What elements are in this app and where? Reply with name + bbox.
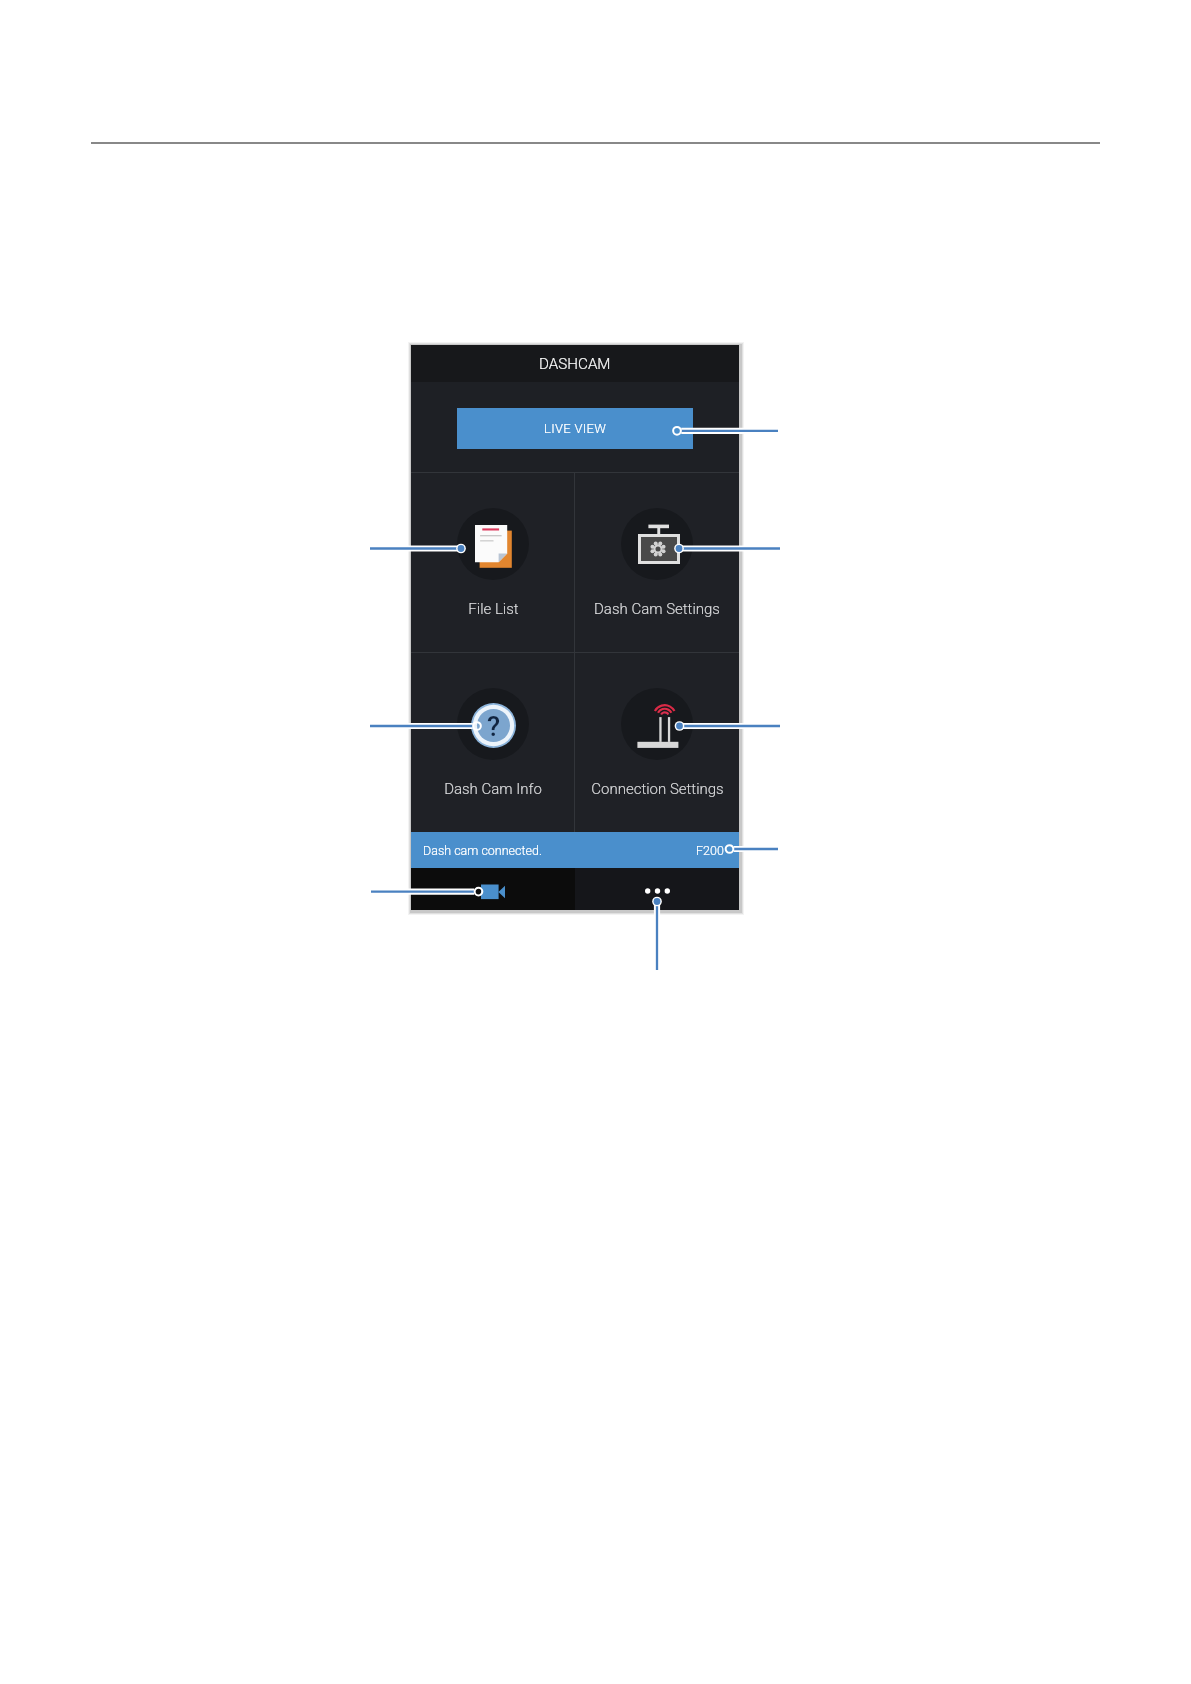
button[interactable]: ? [411,652,575,832]
button[interactable]: Connection Settings [575,652,739,832]
staticText: Dash Cam Settings [594,600,720,618]
button[interactable]: Live video [411,868,575,910]
staticText: File List [468,600,519,618]
button[interactable]: LIVE VIEW [457,408,693,449]
staticText: Connection Settings [591,780,724,798]
staticText: ? [487,711,501,743]
staticText: Dash cam connected. [423,843,542,858]
staticText: DASHCAM [539,355,611,373]
button[interactable]: More options [575,868,739,910]
staticText: Dash Cam Info [444,780,542,798]
staticText: F200 [696,843,724,858]
button[interactable]: File List [411,472,575,652]
button[interactable]: Dash Cam Settings [575,472,739,652]
staticText: LIVE VIEW [544,421,607,436]
